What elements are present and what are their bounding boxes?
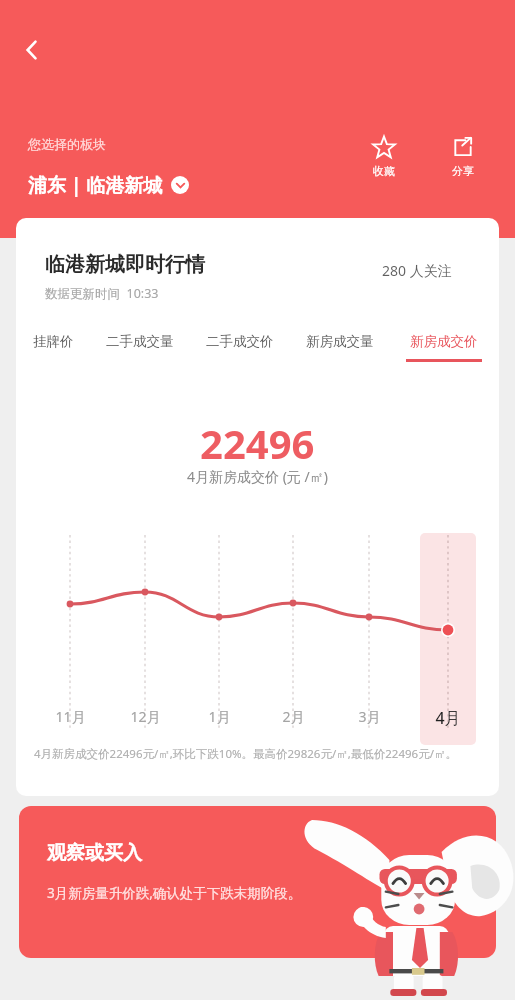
- staticText: 3月新房量升价跌,确认处于下跌末期阶段。: [47, 884, 302, 902]
- staticText: 新房成交价: [410, 333, 478, 350]
- staticText: 3月: [358, 707, 381, 726]
- staticText: 数据更新时间 10:33: [45, 285, 159, 302]
- staticText: 4月新房成交价 (元 /㎡): [187, 467, 328, 486]
- button[interactable]: 新房成交量: [305, 333, 375, 359]
- button[interactable]: 收藏: [358, 135, 410, 178]
- staticText: 1月: [208, 707, 231, 726]
- button[interactable]: 新房成交价: [405, 333, 483, 362]
- staticText: 280 人关注: [382, 261, 452, 280]
- staticText: 临港新城即时行情: [45, 252, 205, 277]
- staticText: 11月: [55, 707, 86, 726]
- staticText: 浦东 | 临港新城: [28, 172, 163, 198]
- staticText: 4月: [435, 707, 461, 729]
- staticText: 挂牌价: [33, 333, 74, 350]
- staticText: 二手成交价: [206, 333, 274, 350]
- staticText: 二手成交量: [106, 333, 174, 350]
- button[interactable]: Back: [10, 28, 54, 72]
- button[interactable]: 浦东 | 临港新城: [28, 172, 189, 198]
- staticText: 收藏: [373, 164, 395, 178]
- staticText: 12月: [130, 707, 161, 726]
- button[interactable]: 挂牌价: [32, 333, 75, 359]
- staticText: 4月新房成交价22496元/㎡,环比下跌10%。最高价29826元/㎡,最低价2…: [34, 746, 484, 762]
- staticText: 新房成交量: [306, 333, 374, 350]
- staticText: 分享: [452, 164, 474, 178]
- button[interactable]: 观察或买入: [19, 806, 496, 958]
- staticText: 22496: [200, 416, 315, 470]
- staticText: 您选择的板块: [28, 136, 106, 152]
- button[interactable]: 二手成交价: [205, 333, 275, 359]
- staticText: 2月: [282, 707, 305, 726]
- button[interactable]: 分享: [437, 135, 489, 178]
- staticText: 观察或买入: [47, 841, 142, 865]
- button[interactable]: 二手成交量: [105, 333, 175, 359]
